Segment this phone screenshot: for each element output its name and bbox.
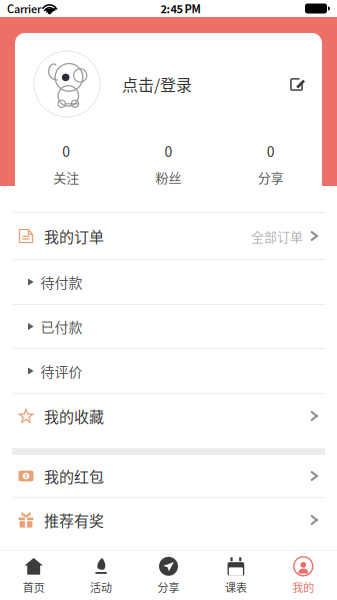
button[interactable]: 待评价 xyxy=(0,349,337,393)
staticText: 活动 xyxy=(90,579,112,595)
staticText: 0 xyxy=(267,141,275,161)
button[interactable]: 0 xyxy=(117,135,220,193)
staticText: 关注 xyxy=(53,168,79,186)
staticText: 点击/登录 xyxy=(122,72,192,96)
button[interactable]: 活动 xyxy=(67,554,135,598)
staticText: 已付款 xyxy=(41,316,83,337)
button[interactable]: 已付款 xyxy=(0,305,337,348)
button[interactable]: 我的 xyxy=(270,554,337,598)
button[interactable]: 课表 xyxy=(202,554,270,598)
staticText: 我的收藏 xyxy=(44,405,104,427)
staticText: 0 xyxy=(164,141,172,161)
staticText: 全部订单 xyxy=(251,227,303,245)
button[interactable]: 编辑资料 xyxy=(284,71,310,97)
staticText: 推荐有奖 xyxy=(44,509,104,531)
staticText: Carrier xyxy=(7,0,41,16)
button[interactable]: 我的收藏 xyxy=(0,394,337,438)
staticText: 我的 xyxy=(292,579,314,595)
staticText: 我的订单 xyxy=(44,225,104,247)
button[interactable]: 我的红包 xyxy=(0,455,337,497)
staticText: 我的红包 xyxy=(44,465,104,487)
button[interactable]: 0 xyxy=(15,135,117,193)
staticText: 待付款 xyxy=(41,272,83,292)
button[interactable]: 我的订单 xyxy=(0,213,337,259)
staticText: 首页 xyxy=(23,579,45,595)
button[interactable]: 推荐有奖 xyxy=(0,498,337,542)
staticText: 分享 xyxy=(157,579,179,595)
staticText: 粉丝 xyxy=(155,168,181,186)
button[interactable]: 待付款 xyxy=(0,260,337,304)
button[interactable]: 分享 xyxy=(135,554,202,598)
staticText: 待评价 xyxy=(41,361,83,381)
staticText: 2:45 PM xyxy=(160,0,200,16)
staticText: 分享 xyxy=(258,168,284,186)
staticText: 课表 xyxy=(225,579,247,595)
button[interactable]: 0 xyxy=(220,135,322,193)
staticText: 0 xyxy=(62,141,70,161)
button[interactable]: 首页 xyxy=(0,554,67,598)
staticText xyxy=(41,0,43,16)
